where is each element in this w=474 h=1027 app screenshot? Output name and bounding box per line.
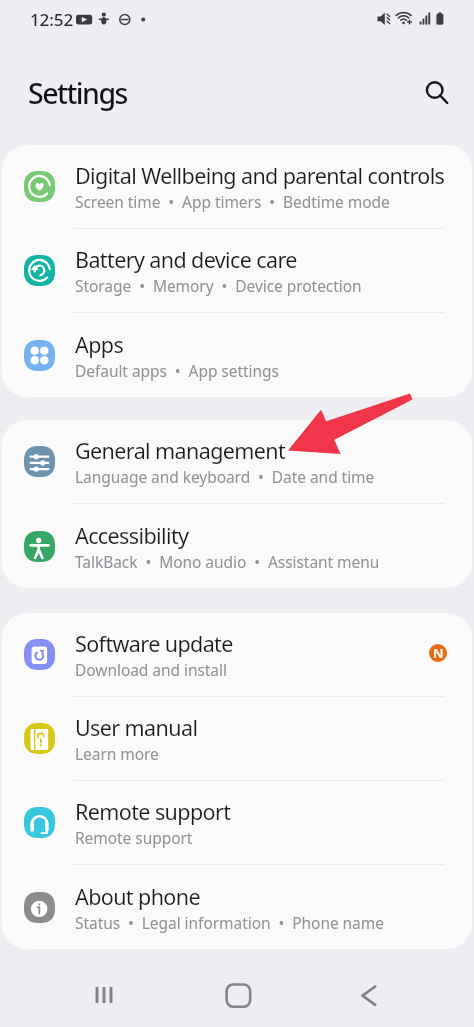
staticText: Software update [75,629,233,658]
staticText: Language and keyboard • Date and time [75,466,375,487]
button[interactable]: User manual [2,697,472,780]
button[interactable]: Back [345,949,393,1027]
staticText: N [433,644,444,662]
staticText: TalkBack • Mono audio • Assistant menu [75,551,380,572]
staticText: User manual [75,713,198,742]
staticText: General management [75,436,286,465]
staticText: Status • Legal information • Phone name [75,912,384,933]
button[interactable]: Recent apps [80,949,128,1027]
button[interactable]: General management [2,420,472,503]
staticText: About phone [75,882,200,911]
button[interactable]: Digital Wellbeing and parental controls [2,145,472,228]
staticText: Battery and device care [75,245,297,274]
staticText: Learn more [75,743,159,764]
button[interactable]: Accessibility [2,504,472,588]
button[interactable]: About phone [2,865,472,949]
button[interactable]: Search [412,73,458,119]
staticText: Default apps • App settings [75,360,279,381]
staticText: Accessibility [75,521,189,550]
button[interactable]: Apps [2,313,472,397]
staticText: Remote support [75,797,231,826]
button[interactable]: Software update [2,613,472,696]
staticText: Settings [28,74,127,113]
staticText: Screen time • App timers • Bedtime mode [75,191,390,212]
button[interactable]: Remote support [2,781,472,864]
staticText: Download and install [75,659,227,680]
staticText: 12:52 [30,8,74,31]
button[interactable]: Home [213,949,261,1027]
button[interactable]: Battery and device care [2,229,472,312]
staticText: Remote support [75,827,193,848]
staticText: Digital Wellbeing and parental controls [75,161,445,190]
staticText: Apps [75,330,124,359]
staticText: Storage • Memory • Device protection [75,275,362,296]
